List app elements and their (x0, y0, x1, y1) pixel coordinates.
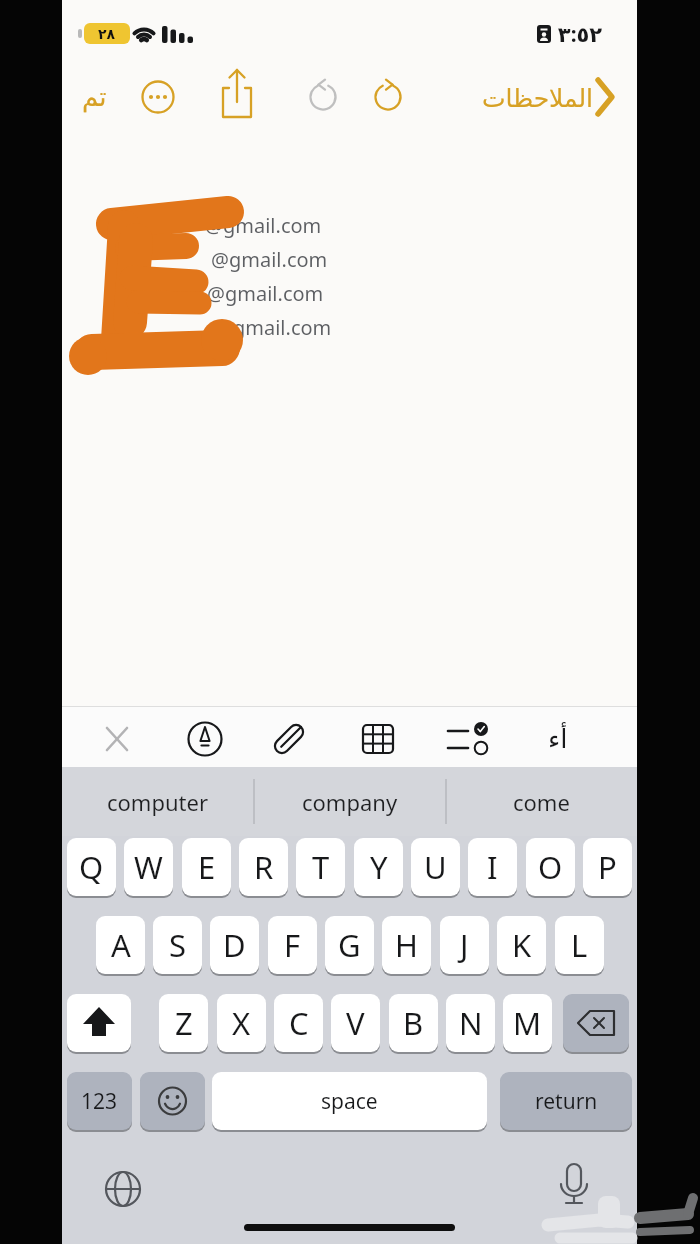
button[interactable]: W (124, 838, 173, 898)
button[interactable]: X (217, 994, 266, 1054)
button[interactable]: O (526, 838, 575, 898)
button[interactable] (557, 1160, 593, 1210)
staticText: الملاحظات (482, 84, 594, 113)
staticText: O (538, 846, 563, 888)
staticText: @gmail.com (207, 280, 327, 307)
button[interactable]: E (182, 838, 231, 898)
staticText: تم (82, 82, 107, 112)
staticText: C (289, 1002, 309, 1044)
button[interactable]: U (411, 838, 460, 898)
button[interactable]: Q (67, 838, 116, 898)
staticText: computer (107, 787, 209, 817)
button[interactable] (103, 725, 131, 753)
staticText: come (513, 787, 570, 817)
button[interactable] (100, 1166, 146, 1212)
button[interactable]: 123 (67, 1072, 132, 1132)
staticText: Z (175, 1002, 193, 1044)
button[interactable]: B (389, 994, 438, 1054)
staticText: @gmail.com (205, 212, 325, 239)
staticText: P (598, 846, 617, 888)
button[interactable]: H (382, 916, 431, 976)
staticText: U (424, 846, 447, 888)
button[interactable]: M (503, 994, 552, 1054)
button[interactable]: P (583, 838, 632, 898)
button[interactable]: Y (354, 838, 403, 898)
staticText: D (223, 924, 246, 966)
button[interactable]: T (296, 838, 345, 898)
staticText: N (459, 1002, 483, 1044)
staticText: J (460, 924, 469, 966)
button[interactable] (446, 722, 486, 756)
button[interactable]: space (212, 1072, 487, 1132)
staticText: F (284, 924, 301, 966)
staticText: ٢٨ (98, 26, 116, 42)
staticText: I (487, 846, 498, 888)
button[interactable] (272, 721, 307, 756)
button[interactable]: computer (62, 767, 253, 836)
staticText: @gmail.com (215, 314, 335, 341)
staticText: Y (370, 846, 388, 888)
staticText: K (512, 924, 532, 966)
staticText: @gmail.com (211, 246, 331, 273)
button[interactable]: F (268, 916, 317, 976)
button[interactable]: I (468, 838, 517, 898)
staticText: T (312, 846, 330, 888)
staticText: company (302, 787, 398, 817)
staticText: return (535, 1087, 598, 1116)
staticText: M (513, 1002, 542, 1044)
staticText: V (346, 1002, 365, 1044)
staticText: H (395, 924, 418, 966)
button[interactable] (188, 721, 223, 756)
button[interactable]: company (254, 767, 445, 836)
button[interactable]: أء (540, 722, 576, 756)
button[interactable]: G (325, 916, 374, 976)
button[interactable] (142, 81, 174, 113)
staticText: W (134, 846, 163, 888)
button[interactable] (361, 723, 394, 756)
button[interactable]: J (440, 916, 489, 976)
button[interactable] (220, 68, 254, 120)
staticText: R (254, 846, 274, 888)
button[interactable]: N (446, 994, 495, 1054)
button[interactable]: K (497, 916, 546, 976)
staticText: X (232, 1002, 251, 1044)
button[interactable] (374, 82, 403, 111)
staticText: space (321, 1087, 378, 1116)
button[interactable] (309, 82, 338, 111)
button[interactable]: V (331, 994, 380, 1054)
button[interactable] (140, 1072, 205, 1132)
staticText: 123 (81, 1087, 118, 1116)
button[interactable]: Z (159, 994, 208, 1054)
staticText: أء (548, 724, 568, 754)
staticText: L (571, 924, 588, 966)
button[interactable]: تم (76, 80, 112, 114)
button[interactable]: D (210, 916, 259, 976)
button[interactable] (67, 994, 131, 1054)
staticText: Q (79, 846, 104, 888)
staticText: ٣:٥٢ (549, 20, 611, 49)
staticText: B (403, 1002, 424, 1044)
staticText: S (169, 924, 187, 966)
staticText: A (111, 924, 131, 966)
button[interactable] (563, 994, 629, 1054)
button[interactable]: S (153, 916, 202, 976)
button[interactable]: R (239, 838, 288, 898)
button[interactable]: L (555, 916, 604, 976)
button[interactable]: A (96, 916, 145, 976)
button[interactable]: الملاحظات (468, 78, 608, 118)
button[interactable]: C (274, 994, 323, 1054)
button[interactable]: come (446, 767, 637, 836)
staticText: G (338, 924, 361, 966)
staticText: E (198, 846, 216, 888)
button[interactable]: return (500, 1072, 632, 1132)
